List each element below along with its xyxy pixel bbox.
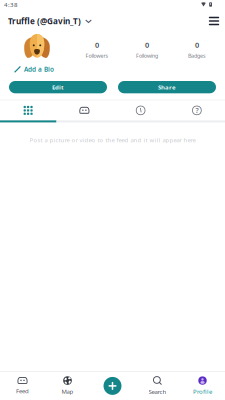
staticText: Followers xyxy=(85,52,108,59)
staticText: Profile xyxy=(193,387,212,395)
staticText: Edit xyxy=(52,83,64,91)
staticText: Share xyxy=(158,83,176,91)
button[interactable]: Menu xyxy=(207,14,221,28)
staticText: 0 xyxy=(195,40,199,50)
button[interactable]: Edit xyxy=(9,81,107,93)
button[interactable]: Feed xyxy=(0,372,45,400)
staticText: Map xyxy=(61,387,73,396)
staticText: 0 xyxy=(95,40,99,50)
staticText: Following xyxy=(136,52,158,59)
staticText: Add a Bio xyxy=(24,65,54,74)
staticText: 0 xyxy=(145,40,149,50)
button[interactable]: Grid xyxy=(0,100,56,120)
button[interactable]: Search xyxy=(135,372,180,400)
staticText: 4:38 xyxy=(4,0,18,9)
button[interactable]: Add a Bio xyxy=(14,65,54,74)
staticText: Search xyxy=(148,387,166,396)
staticText: Truffle (@Gavin_T) xyxy=(8,15,81,27)
staticText: Feed xyxy=(16,387,29,395)
button[interactable]: Recent xyxy=(112,100,169,120)
staticText: ? xyxy=(195,106,198,115)
button[interactable]: Share xyxy=(118,81,216,93)
button[interactable]: Create xyxy=(90,372,135,400)
button[interactable]: Posts xyxy=(56,100,112,120)
button[interactable]: Help xyxy=(169,100,225,120)
staticText: Badges xyxy=(188,52,206,59)
button[interactable]: Profile xyxy=(180,372,225,400)
button[interactable]: Truffle (@Gavin_T) xyxy=(8,13,92,29)
staticText: Post a picture or video to the feed and … xyxy=(29,136,195,144)
button[interactable]: Map xyxy=(45,372,90,400)
